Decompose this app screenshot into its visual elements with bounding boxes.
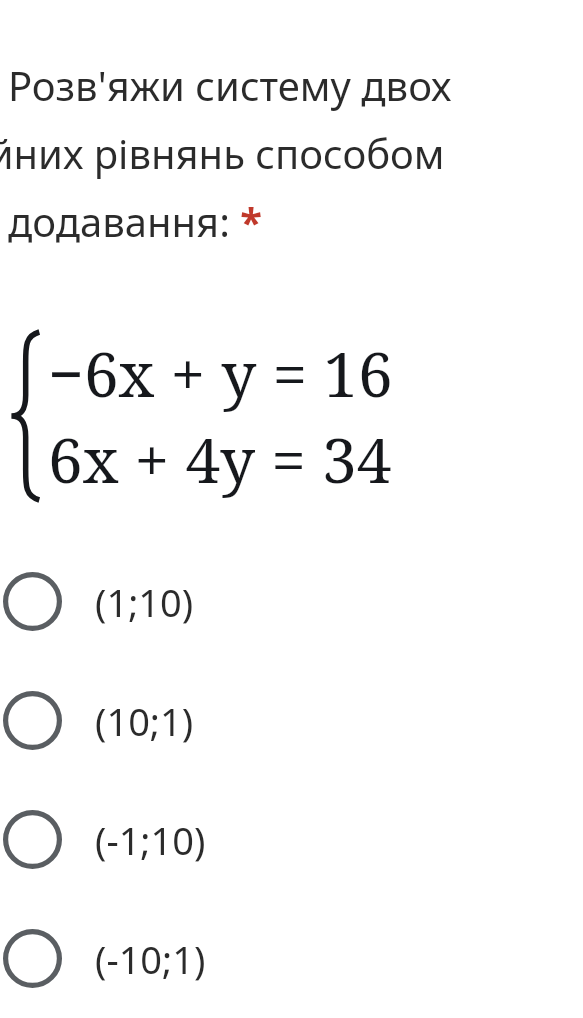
staticText: Розв'яжи систему двох [8,58,452,112]
staticText: (10;1) [95,695,194,747]
button[interactable]: (-1;10) [0,780,583,899]
staticText: лінійних рівнянь способом [0,126,445,180]
staticText: (-1;10) [95,814,206,866]
button[interactable]: (10;1) [0,661,583,780]
staticText: (1;10) [95,576,194,628]
staticText: 6x + 4y = 34 [48,417,392,501]
staticText: додавання: * [8,194,262,248]
staticText: (-10;1) [95,933,206,985]
button[interactable]: (-10;1) [0,899,583,1018]
staticText: −6x + y = 16 [48,331,393,415]
button[interactable]: (1;10) [0,542,583,661]
